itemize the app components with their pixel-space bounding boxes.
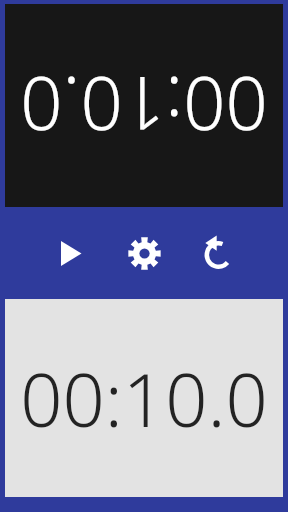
button[interactable]: Reset xyxy=(181,216,255,290)
button[interactable]: Settings xyxy=(107,216,181,290)
button[interactable]: 00:10.0 xyxy=(5,299,283,497)
button[interactable]: 00:10.0 xyxy=(5,4,283,207)
button[interactable]: Start xyxy=(33,216,107,290)
staticText: 00:10.0 xyxy=(5,348,283,449)
staticText: 00:10.0 xyxy=(5,55,283,156)
